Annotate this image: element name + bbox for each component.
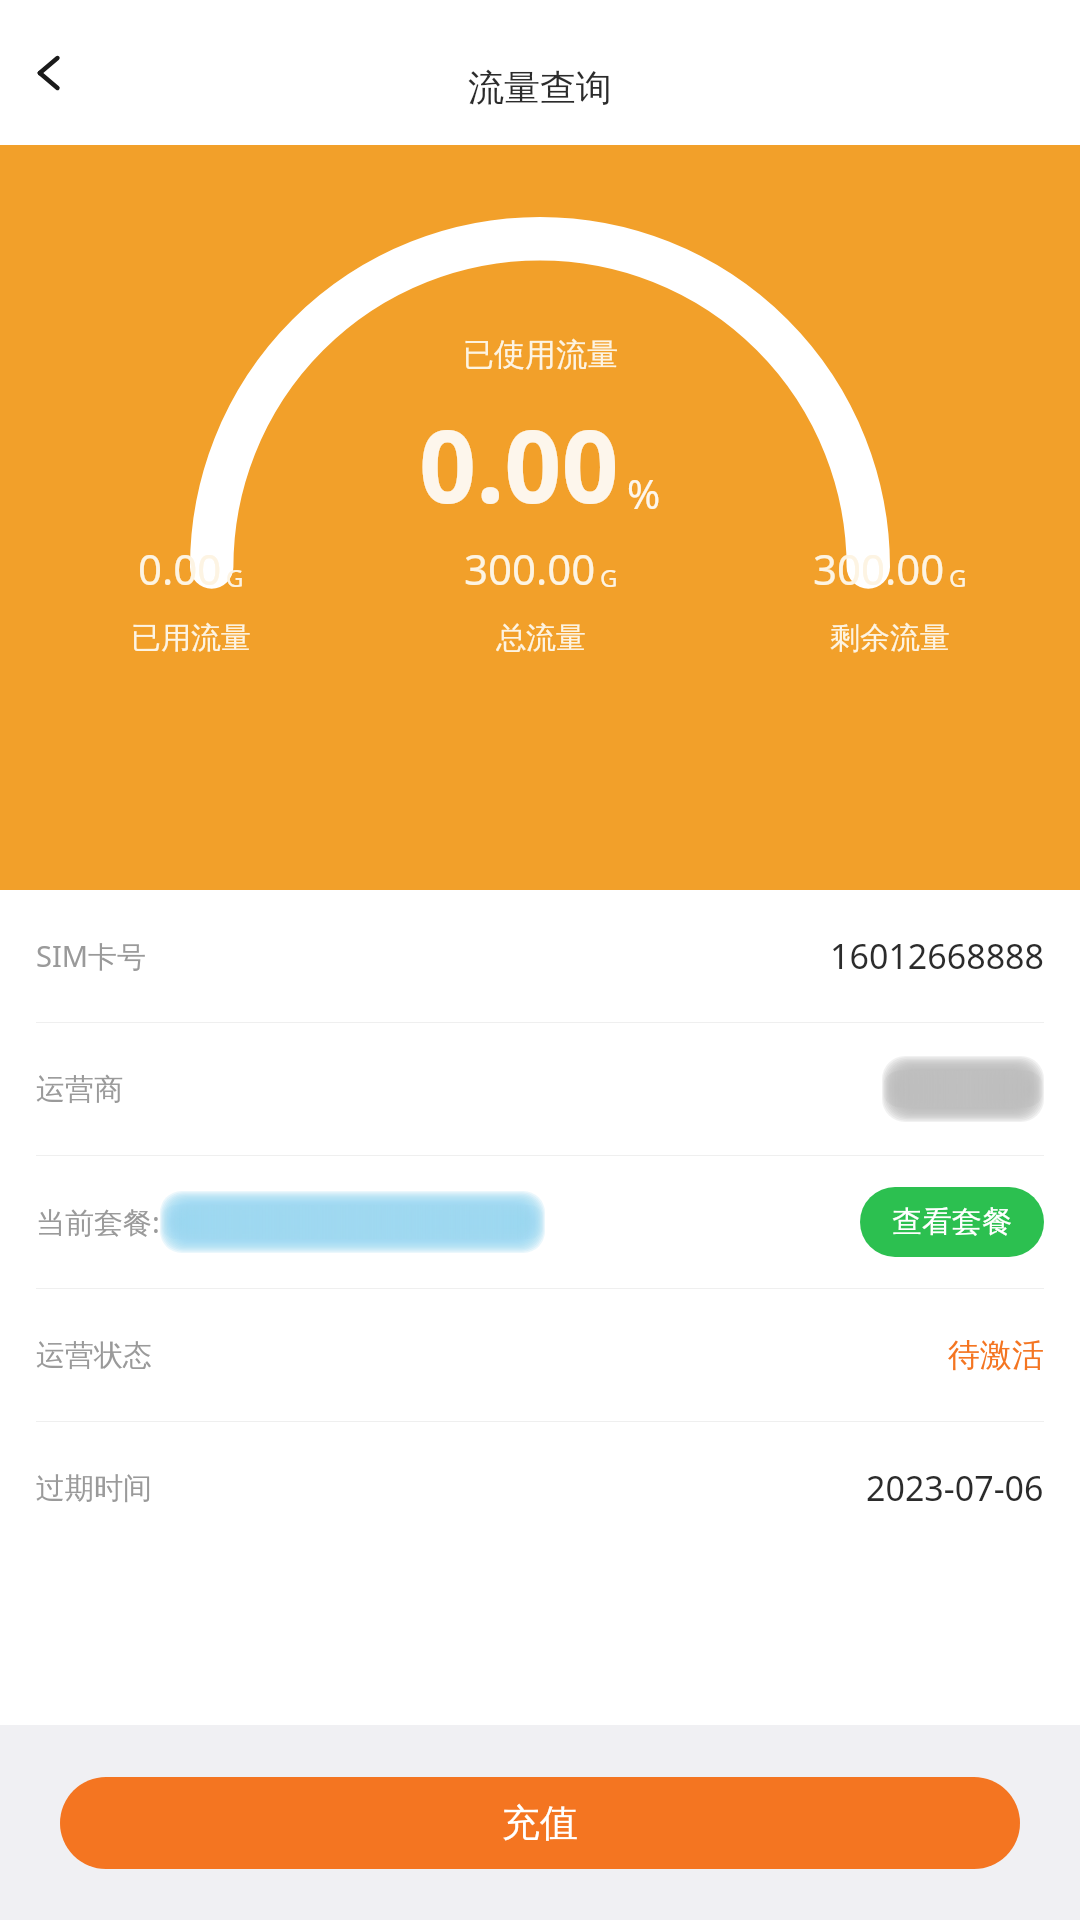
staticText: SIM卡号 [36, 936, 147, 976]
button[interactable]: 过期时间 [0, 1422, 1080, 1554]
staticText: 当前套餐: [36, 1202, 160, 1242]
staticText: % [627, 466, 661, 520]
button[interactable]: 运营状态 [0, 1289, 1080, 1421]
staticText: 已使用流量 [463, 335, 618, 374]
button[interactable]: Back [10, 33, 90, 113]
button[interactable]: 查看套餐 [860, 1187, 1044, 1257]
staticText: 查看套餐 [892, 1203, 1012, 1241]
staticText: 过期时间 [36, 1470, 152, 1507]
staticText: 0.00 [419, 396, 619, 532]
staticText: G [600, 561, 618, 594]
staticText: 总流量 [496, 619, 586, 657]
staticText: 待激活 [948, 1335, 1044, 1375]
staticText: G [949, 561, 967, 594]
staticText: 运营商 [36, 1071, 123, 1108]
staticText: 0.00 [138, 540, 222, 597]
button[interactable]: SIM卡号 [0, 890, 1080, 1022]
staticText: 流量查询 [468, 65, 612, 110]
button[interactable]: 运营商 [0, 1023, 1080, 1155]
staticText: 充值 [502, 1799, 578, 1847]
staticText: 300.00 [464, 540, 596, 597]
staticText: 300.00 [813, 540, 945, 597]
staticText: 已用流量 [131, 619, 251, 657]
staticText: 2023-07-06 [866, 1465, 1044, 1511]
button[interactable]: 充值 [60, 1777, 1020, 1869]
staticText: 剩余流量 [830, 619, 950, 657]
staticText: G [226, 561, 244, 594]
staticText: 运营状态 [36, 1337, 152, 1374]
staticText: 16012668888 [830, 933, 1044, 979]
